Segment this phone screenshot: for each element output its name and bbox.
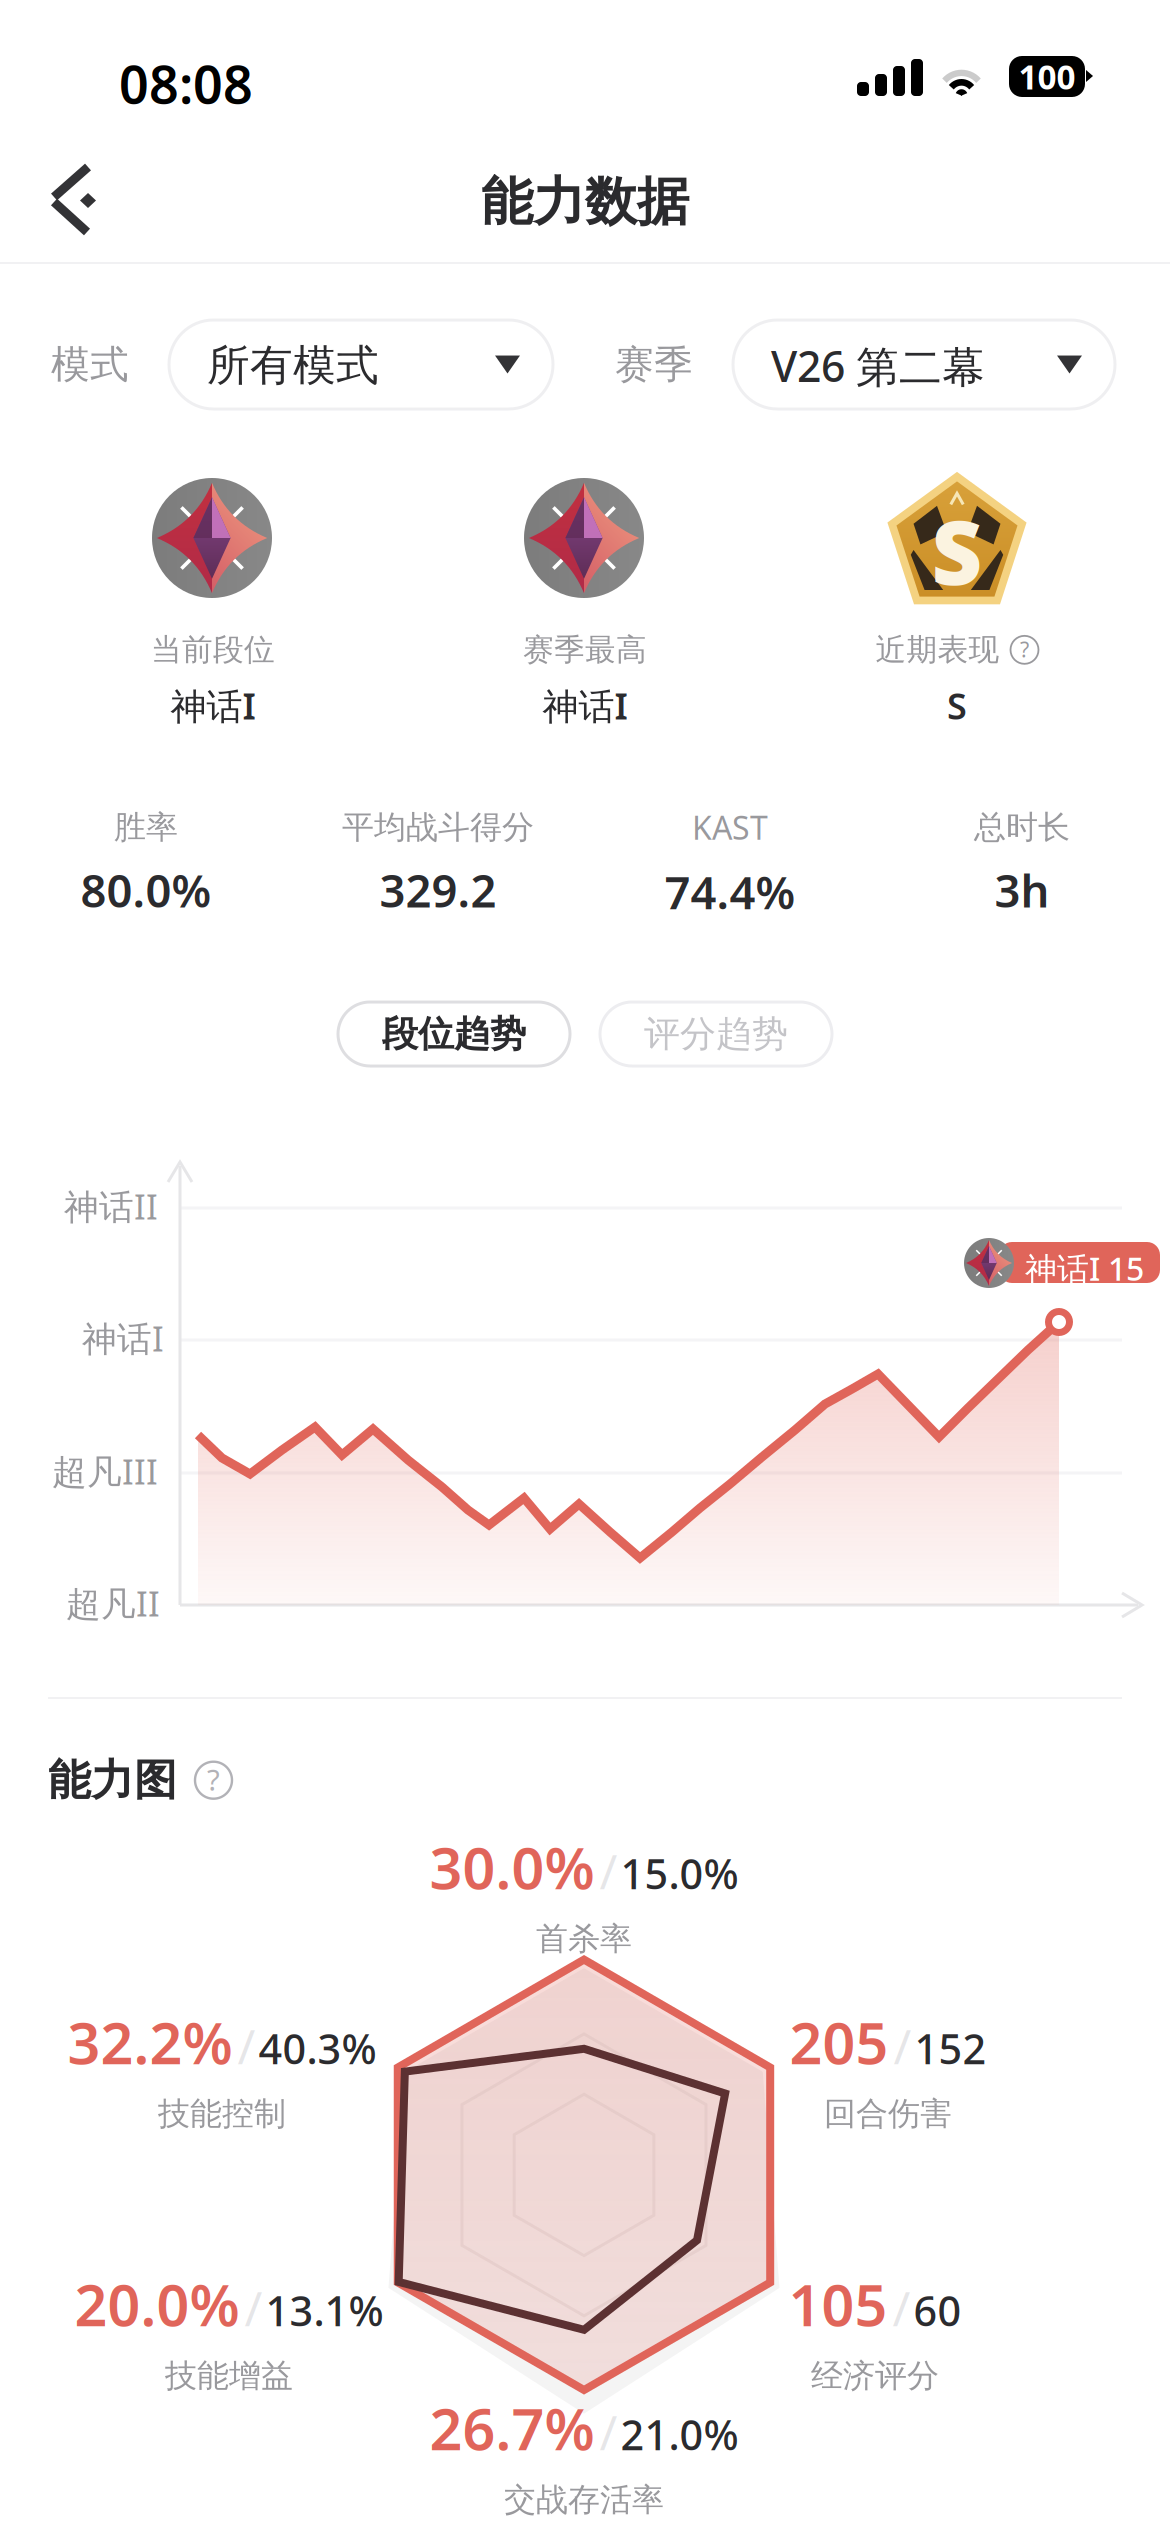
button[interactable]: Back — [40, 150, 150, 250]
staticText: 平均战斗得分 — [342, 808, 534, 847]
staticText: 赛季最高 — [523, 631, 647, 669]
staticText: / — [892, 2276, 910, 2339]
staticText: 205 — [789, 2004, 888, 2080]
staticText: 329.2 — [379, 860, 496, 920]
button[interactable]: 段位趋势 — [338, 1002, 570, 1066]
staticText: 32.2% — [67, 2004, 232, 2080]
staticText: 回合伤害 — [824, 2094, 952, 2133]
staticText: 当前段位 — [151, 631, 275, 669]
staticText: 能力图 — [48, 1754, 177, 1806]
staticText: 技能控制 — [158, 2094, 286, 2133]
staticText: 80.0% — [80, 860, 211, 920]
staticText: 105 — [788, 2266, 887, 2342]
staticText: 能力数据 — [481, 170, 689, 234]
staticText: 经济评分 — [811, 2356, 939, 2395]
staticText: 超凡III — [52, 1448, 158, 1494]
staticText: 21.0% — [620, 2407, 738, 2462]
staticText: / — [237, 2014, 255, 2077]
staticText: 所有模式 — [207, 339, 379, 392]
staticText: 评分趋势 — [644, 1012, 788, 1056]
staticText: / — [244, 2276, 262, 2339]
staticText: 40.3% — [258, 2021, 376, 2076]
staticText: V26 第二幕 — [771, 337, 985, 394]
staticText: 首杀率 — [536, 1919, 632, 1958]
staticText: 神话I — [82, 1315, 164, 1361]
staticText: 神话I 15 — [1025, 1247, 1144, 1289]
staticText: 胜率 — [114, 808, 178, 847]
staticText: 技能增益 — [165, 2356, 293, 2395]
staticText: 100 — [1018, 54, 1075, 99]
staticText: / — [893, 2014, 911, 2077]
staticText: 13.1% — [265, 2283, 383, 2338]
staticText: ? — [1020, 635, 1029, 663]
staticText: 神话I — [542, 682, 627, 729]
staticText: 08:08 — [119, 49, 253, 118]
button[interactable]: 所有模式 — [169, 320, 553, 409]
staticText: / — [599, 1839, 617, 1902]
staticText: 20.0% — [74, 2266, 239, 2342]
staticText: ? — [207, 1760, 220, 1799]
staticText: 交战存活率 — [504, 2480, 664, 2519]
staticText: S — [931, 492, 982, 609]
staticText: 段位趋势 — [382, 1012, 526, 1056]
staticText: 赛季 — [615, 341, 693, 388]
staticText: 超凡II — [66, 1580, 160, 1626]
staticText: / — [599, 2400, 617, 2463]
button[interactable]: 评分趋势 — [600, 1002, 832, 1066]
staticText: 152 — [914, 2021, 986, 2076]
staticText: KAST — [692, 806, 768, 848]
staticText: 3h — [994, 860, 1049, 920]
staticText: 神话II — [64, 1183, 158, 1229]
staticText: 30.0% — [429, 1829, 594, 1905]
staticText: 60 — [913, 2283, 961, 2338]
staticText: 神话I — [170, 682, 255, 729]
staticText: S — [947, 682, 967, 729]
staticText: 26.7% — [429, 2390, 594, 2466]
staticText: 近期表现 — [875, 631, 999, 669]
button[interactable]: V26 第二幕 — [733, 320, 1115, 409]
staticText: 模式 — [51, 341, 129, 388]
staticText: 总时长 — [974, 808, 1070, 847]
staticText: 15.0% — [620, 1846, 738, 1901]
staticText: 74.4% — [664, 861, 795, 922]
